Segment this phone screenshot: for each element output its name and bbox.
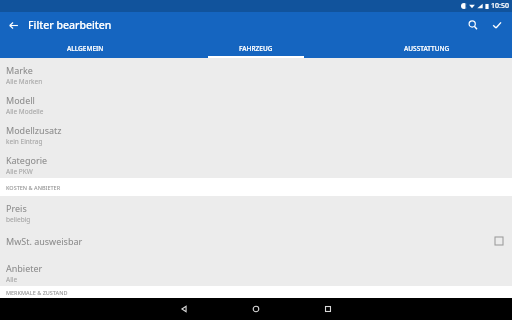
staticText: FAHRZEUG [239,44,273,53]
button[interactable]: AUSSTATTUNG [341,38,512,58]
staticText: Alle Marken [6,77,43,86]
staticText: MwSt. ausweisbar [6,235,495,247]
staticText: kein Eintrag [6,137,43,146]
staticText: Anbieter [6,262,43,274]
staticText: Marke [6,64,33,76]
button[interactable]: ALLGEMEIN [0,38,170,58]
button[interactable]: Modellzusatz [0,118,512,148]
button[interactable]: Back [161,298,207,320]
staticText: 10:50 [491,1,509,11]
button[interactable]: Modell [0,88,512,118]
staticText: Modell [6,94,35,106]
button[interactable]: Anbieter [0,256,512,286]
button[interactable]: MwSt. ausweisbar [0,226,512,256]
button[interactable]: Search [460,12,486,38]
staticText: Preis [6,202,27,214]
button[interactable]: Apply filter [486,12,507,38]
button[interactable]: FAHRZEUG [170,38,341,58]
staticText: Alle PKW [6,167,33,176]
staticText: AUSSTATTUNG [404,44,450,53]
staticText: Modellzusatz [6,124,62,136]
button[interactable]: Back [0,12,26,38]
staticText: KOSTEN & ANBIETER [6,184,61,191]
staticText: Alle [6,275,18,284]
staticText: Kategorie [6,154,48,166]
button[interactable]: Home [233,298,279,320]
button[interactable]: Recent apps [305,298,351,320]
button[interactable]: Marke [0,58,512,88]
staticText: MERKMALE & ZUSTAND [6,289,68,296]
staticText: Filter bearbeiten [28,18,112,32]
button[interactable]: Preis [0,196,512,226]
staticText: ALLGEMEIN [67,44,104,53]
staticText: beliebig [6,215,31,224]
button[interactable]: Kategorie [0,148,512,178]
staticText: Alle Modelle [6,107,44,116]
